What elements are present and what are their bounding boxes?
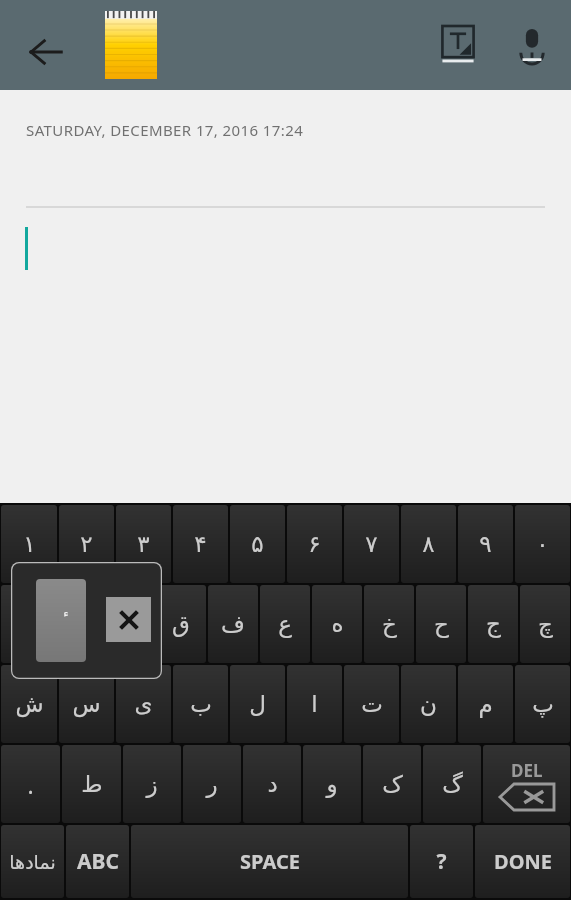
button[interactable]: ۵ [230,505,285,583]
button[interactable]: Close [106,597,151,642]
button[interactable]: ی [116,665,171,743]
button[interactable]: . [1,745,60,823]
staticText: DEL [511,759,543,782]
staticText: ۶ [308,531,321,558]
staticText: گ [442,771,463,798]
button[interactable]: گ [423,745,481,823]
staticText: . [27,769,34,800]
button[interactable]: خ [364,585,414,663]
staticText: خ [382,611,397,638]
staticText: SATURDAY, DECEMBER 17, 2016 17:24 [26,120,304,140]
staticText: ب [190,691,212,718]
button[interactable]: ز [123,745,181,823]
button[interactable]: ط [62,745,121,823]
button[interactable]: ۹ [458,505,513,583]
staticText: ص [63,611,91,638]
staticText: ? [436,847,447,876]
staticText: ی [134,691,153,718]
staticText: ۹ [479,531,492,558]
button[interactable]: Back [18,24,74,80]
staticText: ت [361,691,383,718]
staticText: ۷ [365,531,378,558]
button[interactable]: Note [96,6,166,84]
button[interactable]: د [243,745,301,823]
staticText: د [267,771,278,798]
staticText: ف [221,611,245,638]
button[interactable]: ABC [66,825,129,898]
staticText: ه [331,611,344,638]
button[interactable]: ۴ [173,505,228,583]
button[interactable]: ف [208,585,258,663]
staticText: ط [81,771,103,798]
button[interactable]: ل [230,665,285,743]
button[interactable]: ب [173,665,228,743]
staticText: ج [486,611,501,638]
staticText: پ [532,691,554,718]
button[interactable]: ۶ [287,505,342,583]
button[interactable]: ۳ [116,505,171,583]
button[interactable]: SPACE [131,825,408,898]
button[interactable]: ۷ [344,505,399,583]
staticText: ع [278,611,292,638]
staticText: DONE [494,848,552,875]
button[interactable]: ت [344,665,399,743]
staticText: ز [146,771,158,798]
button[interactable]: ا [287,665,342,743]
staticText: ح [434,611,449,638]
button[interactable]: پ [515,665,570,743]
staticText: ن [420,691,437,718]
button[interactable]: ? [410,825,473,898]
button[interactable]: ٔ [11,562,162,679]
button[interactable]: م [458,665,513,743]
staticText: ق [172,611,190,638]
button[interactable]: ث [104,585,154,663]
button[interactable]: ۱ [1,505,57,583]
staticText: ا [311,691,318,718]
button[interactable]: ک [363,745,421,823]
button[interactable]: چ [520,585,570,663]
staticText: س [72,691,101,718]
button[interactable]: ٔ [36,579,86,662]
button[interactable]: ص [52,585,102,663]
staticText: ر [206,771,218,798]
staticText: ۳ [137,531,150,558]
button[interactable]: Voice input [503,16,561,74]
button[interactable]: س [59,665,114,743]
staticText: ۲ [80,531,93,558]
button[interactable]: ح [416,585,466,663]
staticText: ۵ [251,531,264,558]
button[interactable]: ۰ [515,505,570,583]
staticText: و [326,771,338,798]
staticText: ۸ [422,531,435,558]
staticText: ل [249,691,266,718]
staticText: ک [382,771,403,798]
staticText: نمادها [9,851,56,873]
button[interactable]: و [303,745,361,823]
button[interactable]: Text formatting [429,16,487,74]
button[interactable]: DONE [475,825,570,898]
staticText: م [478,691,493,718]
button[interactable]: ن [401,665,456,743]
staticText: ض [12,611,40,638]
button[interactable]: ۲ [59,505,114,583]
staticText: ۴ [194,531,207,558]
button[interactable]: ق [156,585,206,663]
button[interactable]: ض [1,585,50,663]
button[interactable]: ش [1,665,57,743]
button[interactable]: ه [312,585,362,663]
staticText: چ [538,611,553,638]
button[interactable]: ر [183,745,241,823]
staticText: ث [118,611,140,638]
staticText: ش [15,691,44,718]
button[interactable]: ع [260,585,310,663]
button[interactable]: ۸ [401,505,456,583]
staticText: ۰ [536,531,549,558]
button[interactable]: ج [468,585,518,663]
button[interactable]: نمادها [1,825,64,898]
staticText: ۱ [23,531,36,558]
staticText: SPACE [240,848,300,875]
button[interactable]: DEL [483,745,570,823]
staticText: ABC [77,847,119,876]
